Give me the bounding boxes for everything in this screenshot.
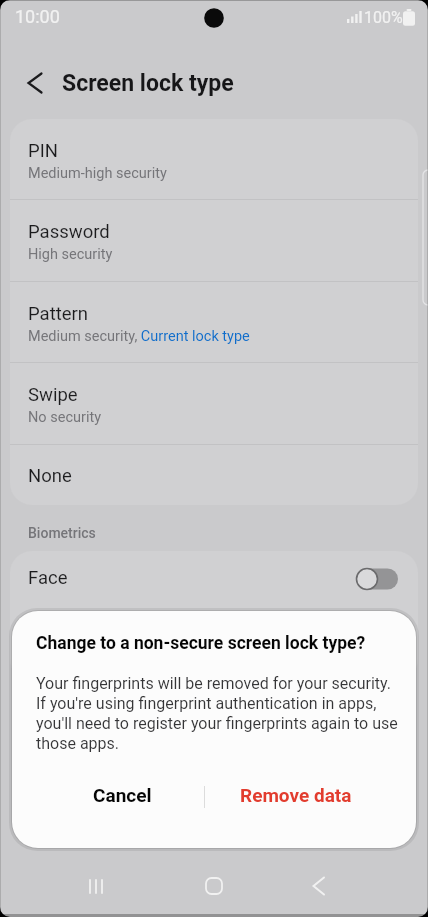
staticText: High security <box>28 246 113 263</box>
staticText: Password <box>28 221 110 243</box>
button[interactable]: Swipe <box>10 363 418 445</box>
staticText: Biometrics <box>28 525 96 541</box>
staticText: Change to a non-secure screen lock type? <box>36 633 366 654</box>
staticText: Face <box>28 567 68 589</box>
button[interactable]: PIN <box>10 119 418 200</box>
button[interactable] <box>190 864 238 908</box>
staticText: Cancel <box>93 784 152 806</box>
staticText: 10:00 <box>15 6 60 27</box>
staticText: No security <box>28 409 102 426</box>
button[interactable]: Face <box>10 551 418 681</box>
staticText: Medium-high security <box>28 165 167 182</box>
staticText: 100% <box>364 8 403 27</box>
button[interactable]: None <box>10 445 418 505</box>
staticText: Swipe <box>28 384 78 406</box>
button[interactable] <box>14 63 54 103</box>
staticText: Pattern <box>28 303 89 325</box>
staticText: PIN <box>28 140 58 162</box>
button[interactable]: Remove data <box>234 771 358 819</box>
staticText: None <box>28 465 72 487</box>
button[interactable] <box>296 864 344 908</box>
button[interactable]: Pattern <box>10 282 418 363</box>
staticText: Your fingerprints will be removed for yo… <box>36 674 398 753</box>
button[interactable] <box>72 864 120 908</box>
button[interactable]: Password <box>10 200 418 282</box>
staticText: Medium security, Current lock type <box>28 328 250 345</box>
staticText: Remove data <box>240 784 352 806</box>
staticText: Screen lock type <box>62 70 234 97</box>
button[interactable]: Cancel <box>60 771 184 819</box>
